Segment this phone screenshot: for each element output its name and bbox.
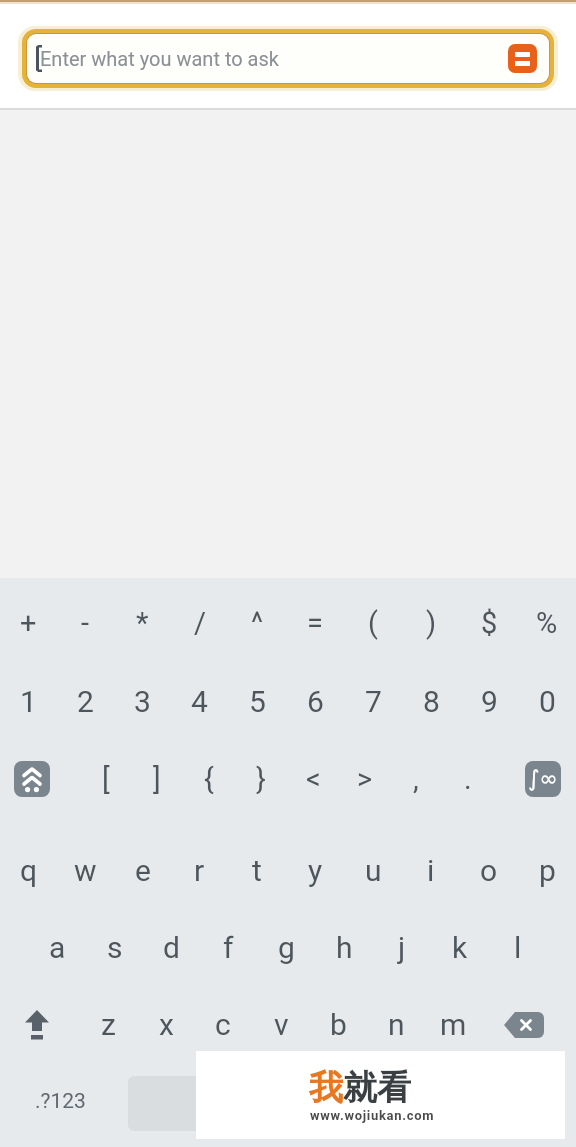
- button[interactable]: 5: [228, 662, 286, 740]
- staticText: 1: [20, 684, 37, 719]
- staticText: x: [159, 1007, 174, 1042]
- button[interactable]: ^: [228, 584, 286, 662]
- staticText: j: [398, 930, 406, 965]
- button[interactable]: %: [518, 584, 576, 662]
- button[interactable]: t: [228, 832, 286, 909]
- button[interactable]: a: [29, 909, 86, 986]
- button[interactable]: .?123: [18, 1063, 102, 1140]
- button[interactable]: m: [424, 986, 482, 1063]
- staticText: $: [481, 606, 498, 640]
- staticText: ]: [153, 762, 161, 796]
- button[interactable]: /: [171, 584, 228, 662]
- button[interactable]: [8, 986, 66, 1063]
- staticText: 7: [365, 684, 382, 719]
- staticText: k: [452, 930, 468, 965]
- button[interactable]: [508, 44, 537, 73]
- staticText: z: [101, 1007, 116, 1042]
- button[interactable]: 4: [171, 662, 228, 740]
- staticText: t: [252, 853, 262, 888]
- staticText: y: [308, 853, 323, 888]
- staticText: u: [365, 853, 382, 888]
- button[interactable]: 8: [402, 662, 460, 740]
- button[interactable]: 9: [460, 662, 518, 740]
- button[interactable]: y: [286, 832, 344, 909]
- button[interactable]: [495, 986, 553, 1063]
- button[interactable]: ∫∞: [525, 761, 561, 797]
- button[interactable]: l: [489, 909, 547, 986]
- button[interactable]: .: [442, 740, 494, 818]
- button[interactable]: 7: [344, 662, 402, 740]
- staticText: www.wojiukan.com: [310, 1108, 435, 1123]
- button[interactable]: +: [0, 584, 57, 662]
- staticText: .: [464, 762, 472, 796]
- button[interactable]: ,: [390, 740, 442, 818]
- staticText: -: [81, 606, 90, 640]
- button[interactable]: *: [114, 584, 171, 662]
- button[interactable]: 0: [518, 662, 576, 740]
- staticText: }: [256, 762, 266, 796]
- staticText: m: [440, 1007, 467, 1042]
- button[interactable]: b: [309, 986, 367, 1063]
- button[interactable]: h: [315, 909, 373, 986]
- button[interactable]: q: [0, 832, 57, 909]
- button[interactable]: n: [367, 986, 425, 1063]
- button[interactable]: [: [80, 740, 132, 818]
- staticText: r: [194, 853, 205, 888]
- staticText: 2: [77, 684, 94, 719]
- staticText: l: [514, 930, 522, 965]
- staticText: h: [336, 930, 353, 965]
- button[interactable]: {: [183, 740, 235, 818]
- button[interactable]: c: [194, 986, 252, 1063]
- staticText: c: [215, 1007, 231, 1042]
- button[interactable]: p: [518, 832, 576, 909]
- button[interactable]: <: [287, 740, 339, 818]
- button[interactable]: [128, 1076, 430, 1131]
- button[interactable]: 2: [57, 662, 114, 740]
- staticText: %: [536, 606, 558, 640]
- staticText: w: [74, 853, 97, 888]
- button[interactable]: -: [57, 584, 114, 662]
- staticText: 8: [423, 684, 440, 719]
- staticText: g: [278, 930, 295, 965]
- staticText: {: [204, 762, 214, 796]
- button[interactable]: 3: [114, 662, 171, 740]
- button[interactable]: z: [79, 986, 137, 1063]
- button[interactable]: [14, 761, 50, 797]
- staticText: /: [194, 606, 206, 640]
- button[interactable]: (: [344, 584, 402, 662]
- button[interactable]: }: [235, 740, 287, 818]
- button[interactable]: w: [57, 832, 114, 909]
- button[interactable]: r: [171, 832, 228, 909]
- staticText: e: [135, 853, 151, 888]
- button[interactable]: >: [339, 740, 391, 818]
- button[interactable]: Enter what you want to ask: [27, 34, 549, 83]
- button[interactable]: s: [86, 909, 143, 986]
- button[interactable]: d: [143, 909, 200, 986]
- button[interactable]: $: [460, 584, 518, 662]
- button[interactable]: x: [137, 986, 195, 1063]
- button[interactable]: k: [431, 909, 489, 986]
- button[interactable]: v: [252, 986, 310, 1063]
- staticText: 4: [191, 684, 208, 719]
- button[interactable]: e: [114, 832, 171, 909]
- staticText: Enter what you want to ask: [40, 47, 279, 70]
- button[interactable]: o: [460, 832, 518, 909]
- staticText: *: [136, 606, 149, 640]
- staticText: i: [427, 853, 435, 888]
- button[interactable]: u: [344, 832, 402, 909]
- button[interactable]: f: [200, 909, 257, 986]
- staticText: v: [274, 1007, 289, 1042]
- button[interactable]: i: [402, 832, 460, 909]
- staticText: f: [223, 930, 234, 965]
- button[interactable]: 1: [0, 662, 57, 740]
- button[interactable]: ]: [131, 740, 183, 818]
- button[interactable]: g: [257, 909, 315, 986]
- button[interactable]: j: [373, 909, 431, 986]
- staticText: s: [107, 930, 123, 965]
- button[interactable]: 6: [286, 662, 344, 740]
- staticText: <: [306, 762, 321, 796]
- staticText: p: [539, 853, 556, 888]
- staticText: (: [368, 606, 378, 640]
- button[interactable]: ): [402, 584, 460, 662]
- button[interactable]: =: [286, 584, 344, 662]
